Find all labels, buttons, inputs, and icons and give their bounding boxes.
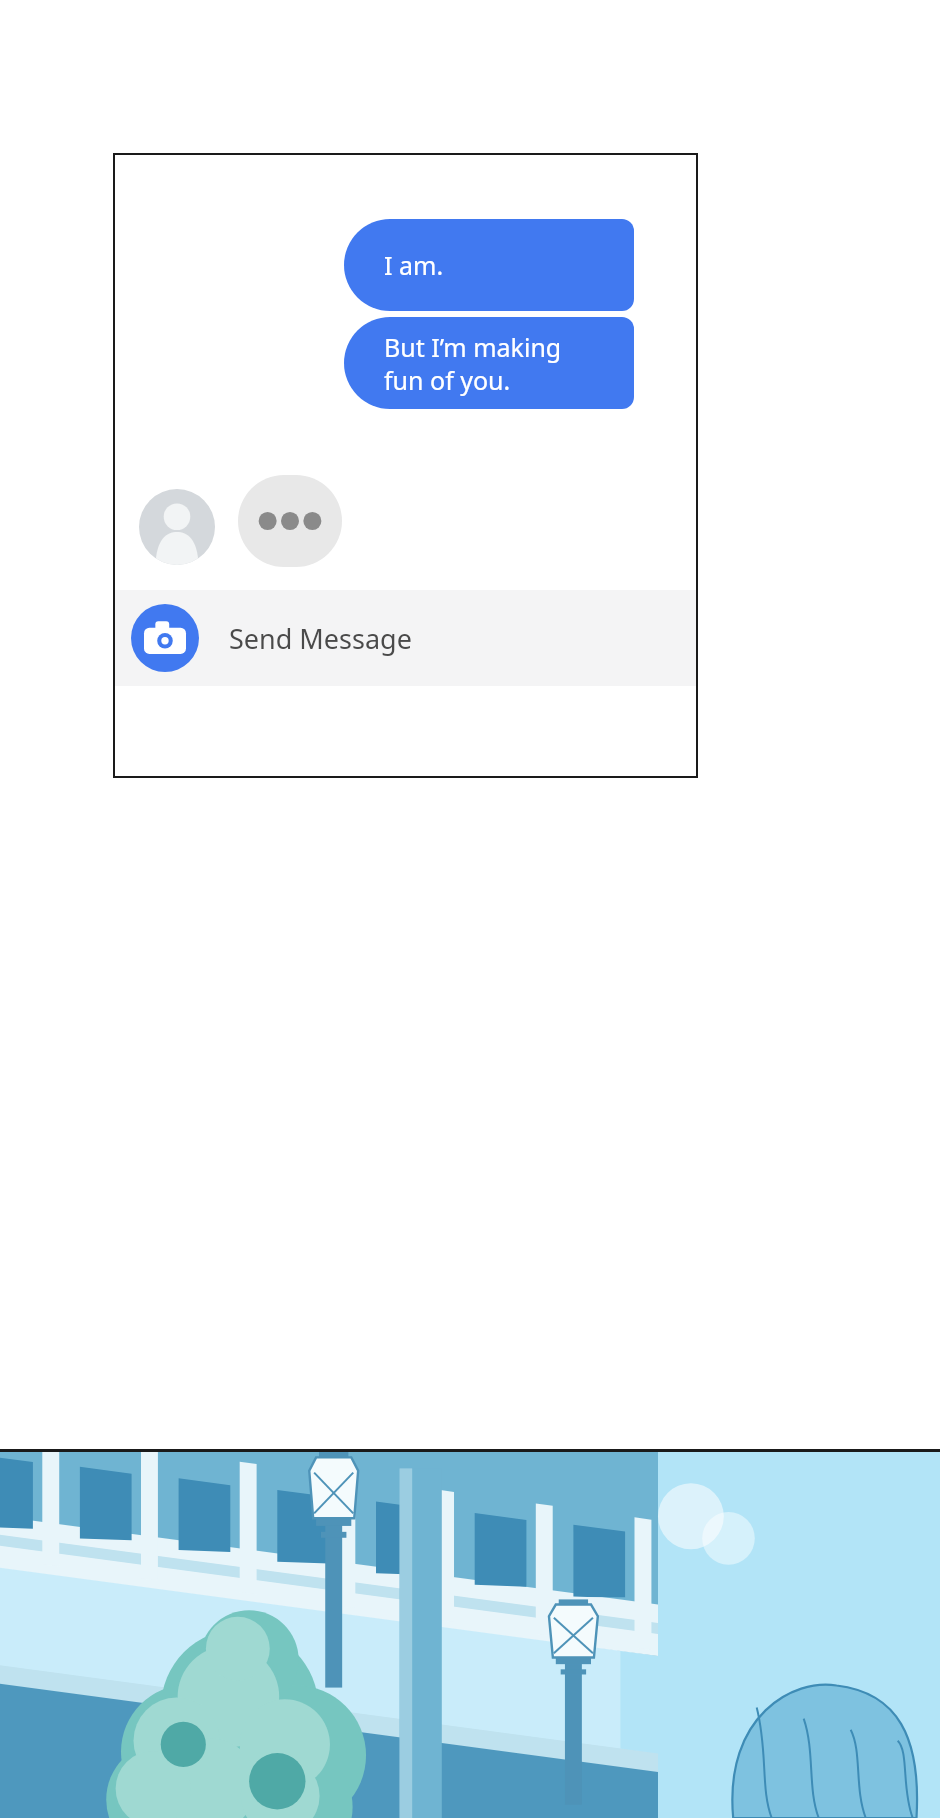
staticText: But I’m making fun of you.	[384, 330, 562, 397]
staticText: I am.	[384, 248, 444, 282]
button[interactable]: But I’m making fun of you.	[344, 317, 634, 409]
button[interactable]: I am.	[344, 219, 634, 311]
staticText: Send Message	[229, 620, 412, 657]
button[interactable]: Camera	[131, 604, 199, 672]
button[interactable]: Camera	[113, 590, 698, 686]
